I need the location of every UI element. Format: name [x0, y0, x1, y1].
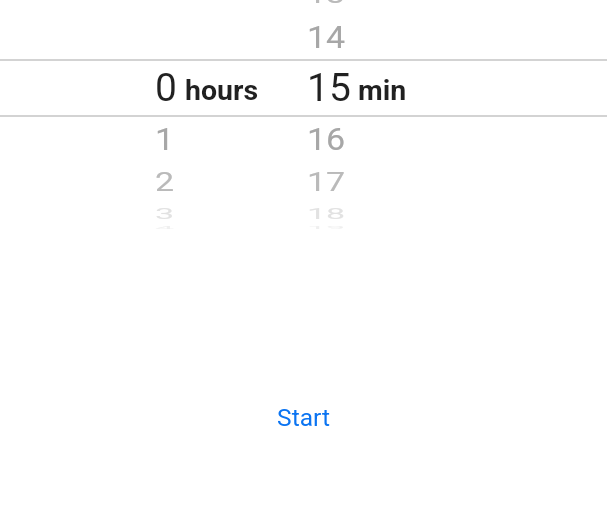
staticText: 18 [307, 205, 346, 223]
staticText: 19 [307, 226, 346, 230]
staticText: 1 [155, 120, 175, 158]
staticText: 3 [155, 205, 175, 223]
staticText: 16 [307, 120, 346, 158]
staticText: hours [185, 74, 259, 107]
staticText: Start [277, 403, 330, 432]
staticText: 15 [307, 65, 351, 111]
staticText: 2 [155, 167, 175, 197]
staticText: 0 [155, 65, 177, 111]
button[interactable]: Start [257, 393, 350, 442]
staticText: 13 [307, 0, 346, 9]
staticText: min [358, 74, 407, 107]
staticText: 14 [307, 18, 346, 56]
staticText: 4 [155, 226, 175, 230]
button[interactable]: Minutes picker [282, 0, 432, 236]
button[interactable]: Hours picker [130, 0, 280, 236]
staticText: 17 [307, 167, 346, 197]
